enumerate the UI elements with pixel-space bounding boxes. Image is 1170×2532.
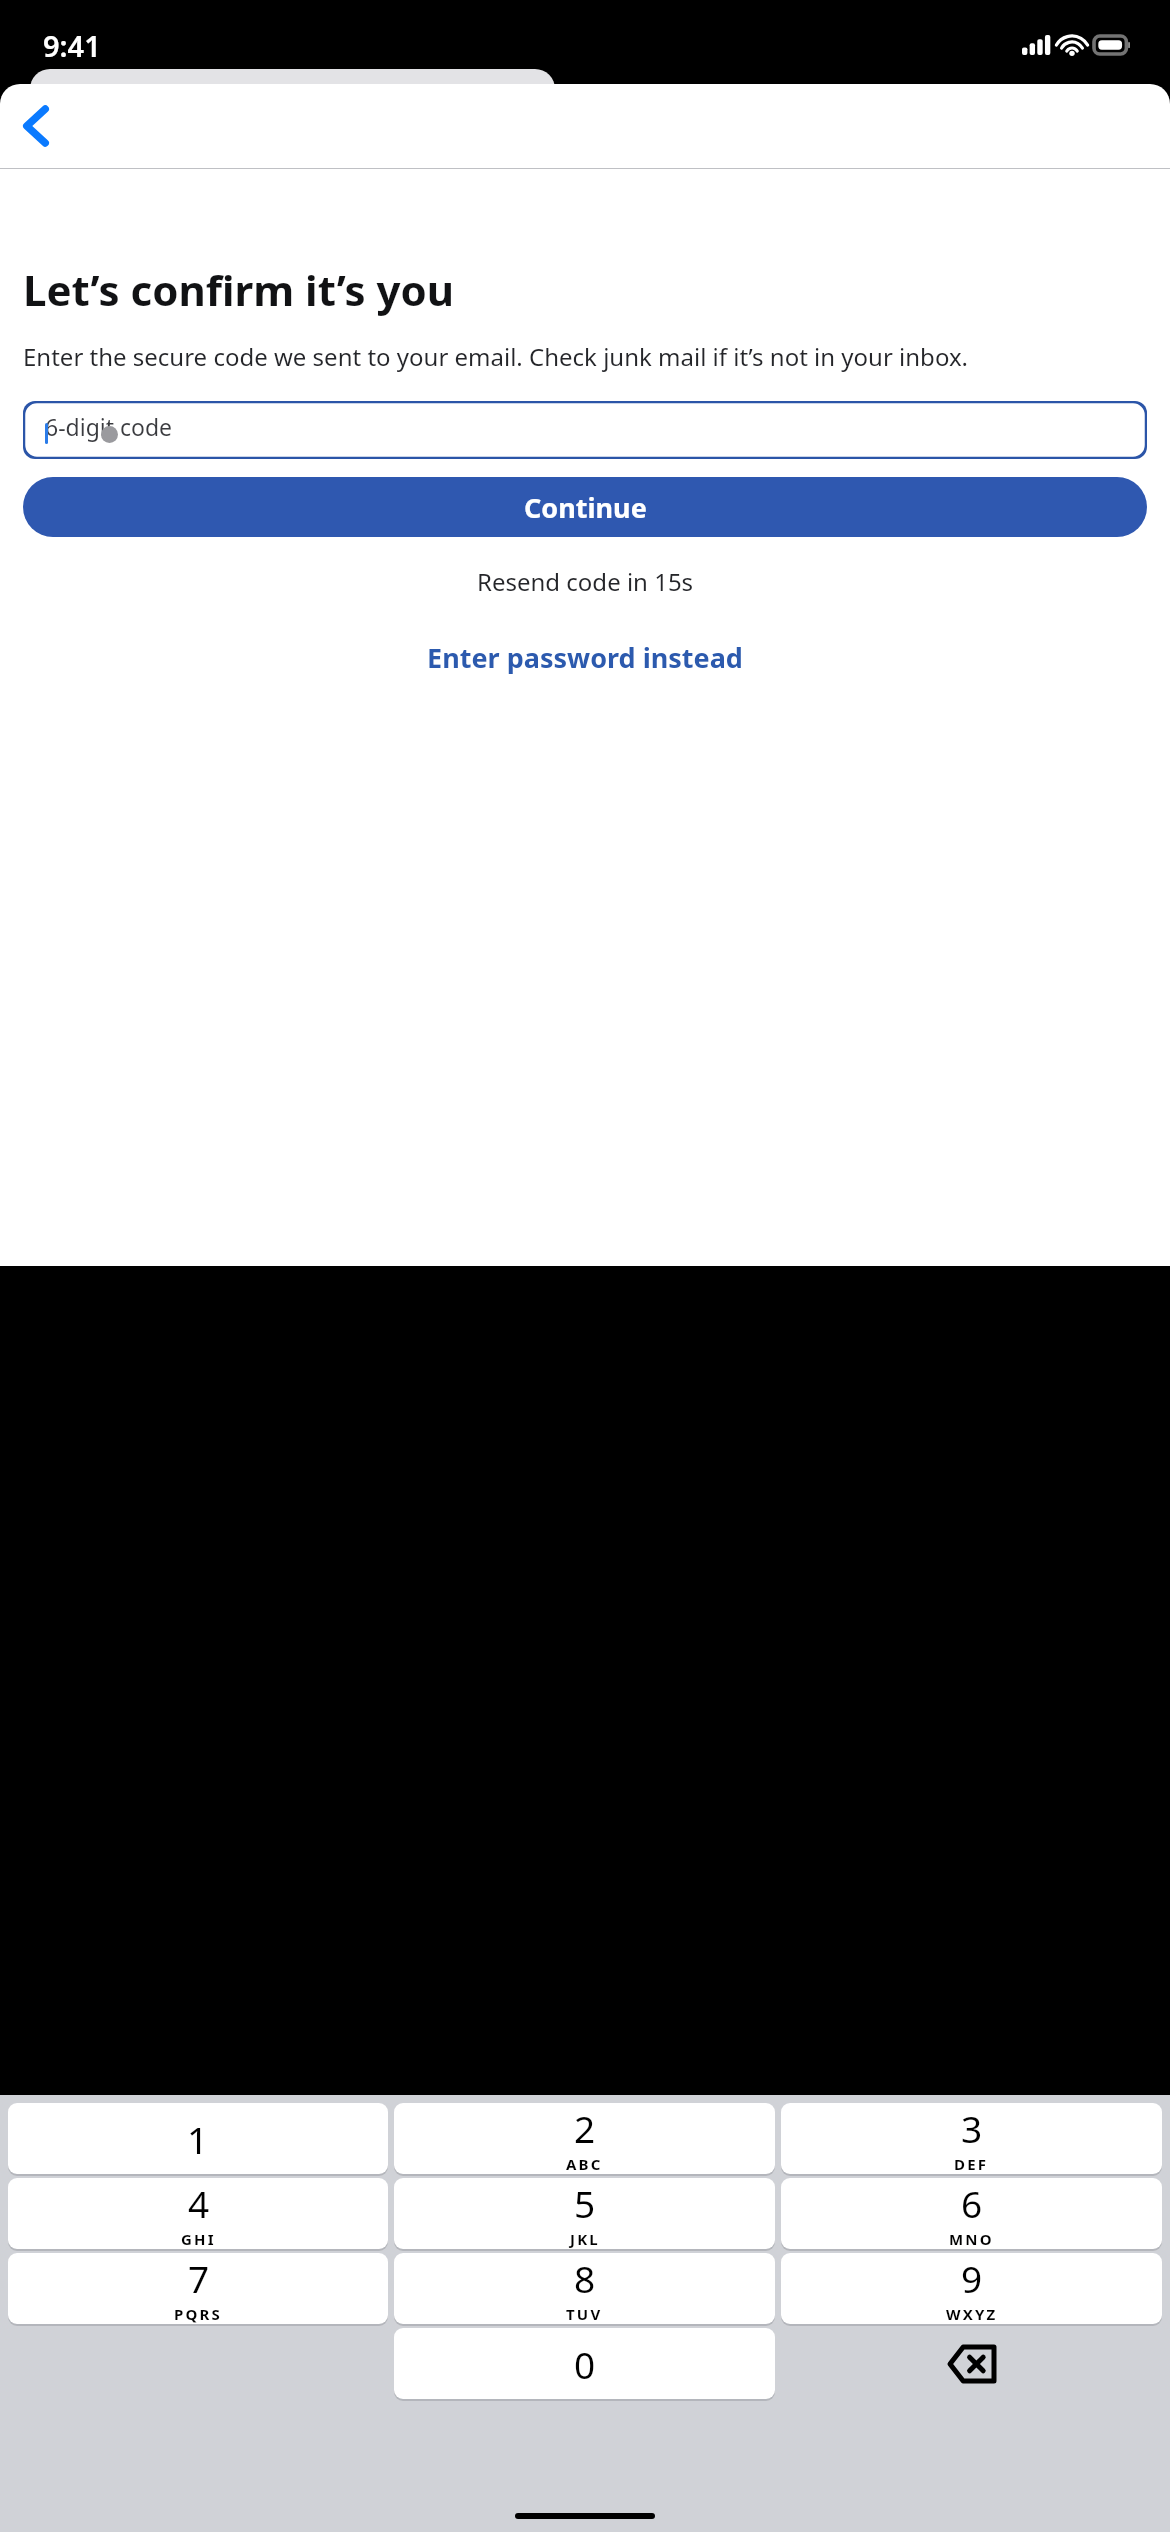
button[interactable]: 9	[781, 2253, 1162, 2324]
staticText: WXYZ	[946, 2304, 998, 2324]
staticText: 1	[187, 2114, 209, 2164]
button[interactable]: 6	[781, 2178, 1162, 2249]
button[interactable]: Backspace	[781, 2328, 1162, 2399]
staticText: Enter password instead	[427, 639, 743, 676]
button[interactable]: 8	[394, 2253, 775, 2324]
staticText: 7	[188, 2253, 210, 2303]
staticText: JKL	[570, 2229, 600, 2249]
staticText: 6	[961, 2178, 983, 2228]
staticText: PQRS	[174, 2304, 223, 2324]
staticText: 9:41	[43, 26, 101, 65]
staticText: 0	[574, 2339, 596, 2389]
button[interactable]: 5	[394, 2178, 775, 2249]
staticText: 5	[574, 2178, 596, 2228]
button[interactable]: 1	[8, 2103, 388, 2174]
button[interactable]: 7	[8, 2253, 388, 2324]
button[interactable]: 0	[394, 2328, 775, 2399]
staticText: Resend code in 15s	[477, 565, 694, 598]
staticText: 9	[961, 2253, 983, 2303]
button[interactable]: 3	[781, 2103, 1162, 2174]
button[interactable]: Back	[8, 98, 64, 154]
staticText: TUV	[566, 2304, 603, 2324]
button[interactable]: Continue	[23, 477, 1147, 537]
staticText: 6-digit code	[45, 411, 173, 442]
staticText: 3	[961, 2103, 983, 2153]
staticText: 4	[188, 2178, 210, 2228]
button[interactable]: 6-digit code	[23, 401, 1147, 459]
staticText: DEF	[954, 2154, 989, 2174]
staticText: ABC	[566, 2154, 603, 2174]
staticText: Continue	[524, 489, 647, 526]
staticText: GHI	[181, 2229, 216, 2249]
staticText: Enter the secure code we sent to your em…	[23, 340, 969, 373]
button[interactable]: Enter password instead	[23, 634, 1147, 680]
staticText: 2	[574, 2103, 596, 2153]
button[interactable]: 2	[394, 2103, 775, 2174]
staticText: MNO	[949, 2229, 994, 2249]
button[interactable]: Resend code in 15s	[23, 565, 1147, 598]
staticText: Let’s confirm it’s you	[23, 261, 455, 318]
button[interactable]: 4	[8, 2178, 388, 2249]
staticText: 8	[574, 2253, 596, 2303]
